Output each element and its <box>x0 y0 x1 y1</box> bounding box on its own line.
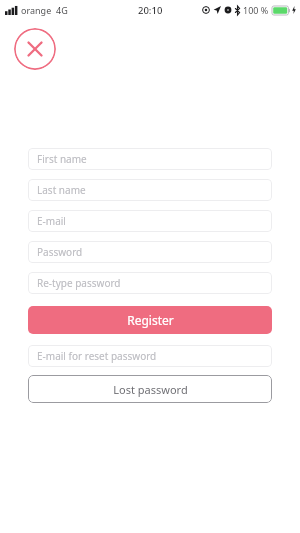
button[interactable]: Lost password <box>28 375 272 403</box>
button[interactable]: Close <box>14 28 56 70</box>
staticText: First name <box>37 152 87 166</box>
staticText: Register <box>127 312 174 328</box>
staticText: 20:10 <box>138 4 163 17</box>
staticText: Last name <box>37 183 86 197</box>
staticText: E-mail <box>37 214 66 228</box>
button[interactable]: Register <box>28 306 272 334</box>
button[interactable]: E-mail for reset password <box>28 345 272 367</box>
staticText: Re-type password <box>37 276 121 290</box>
button[interactable]: Re-type password <box>28 272 272 294</box>
staticText: Password <box>37 245 83 259</box>
button[interactable]: First name <box>28 148 272 170</box>
staticText: Lost password <box>113 382 188 397</box>
staticText: 4G <box>56 4 68 16</box>
button[interactable]: Last name <box>28 179 272 201</box>
staticText: 100 % <box>243 4 269 16</box>
button[interactable]: Password <box>28 241 272 263</box>
staticText: E-mail for reset password <box>37 349 157 363</box>
button[interactable]: E-mail <box>28 210 272 232</box>
staticText: orange <box>21 4 52 16</box>
